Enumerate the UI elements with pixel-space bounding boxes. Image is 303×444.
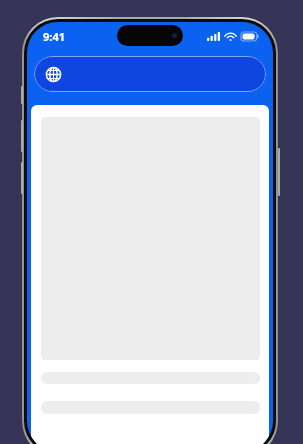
- button[interactable]: Site information: [34, 56, 266, 92]
- staticText: 9:41: [43, 29, 65, 44]
- button[interactable]: Site information: [45, 66, 62, 83]
